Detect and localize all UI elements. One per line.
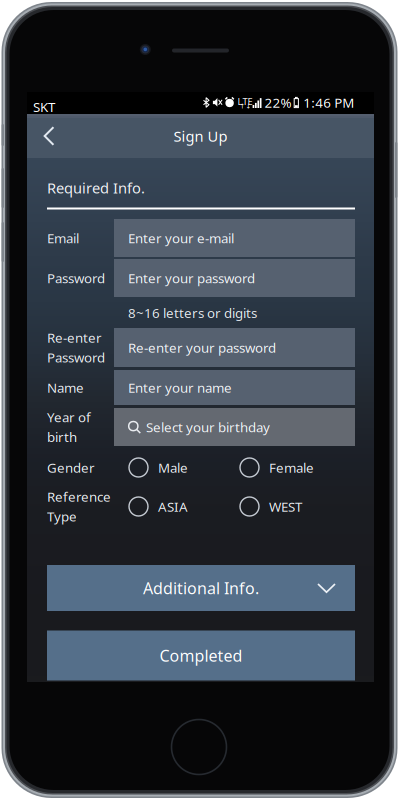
staticText: Enter your name [128, 379, 232, 396]
staticText: Select your birthday [146, 418, 270, 436]
staticText: ASIA [158, 498, 188, 515]
staticText: ↑↓ [240, 102, 252, 110]
staticText: Female [269, 459, 314, 476]
button[interactable]: Completed [47, 630, 355, 680]
staticText: Reference [47, 488, 111, 505]
button[interactable]: Additional Info. [47, 565, 355, 611]
staticText: Re-enter your password [128, 339, 276, 356]
staticText: birth [47, 428, 77, 446]
staticText: Re-enter [47, 329, 102, 346]
staticText: Enter your e-mail [128, 229, 234, 247]
staticText: Male [158, 459, 188, 476]
button[interactable]: WEST [240, 487, 340, 526]
staticText: Required Info. [47, 178, 145, 197]
staticText: Completed [159, 645, 242, 666]
staticText: Sign Up [173, 126, 227, 146]
staticText: SKT [33, 98, 55, 116]
button[interactable]: Female [240, 448, 340, 487]
staticText: LTE [238, 95, 253, 108]
staticText: Year of [47, 408, 91, 426]
staticText: Password [47, 348, 105, 366]
staticText: Additional Info. [143, 577, 259, 599]
button[interactable]: Back [27, 114, 71, 158]
staticText: Gender [47, 459, 95, 476]
staticText: 8~16 letters or digits [128, 304, 257, 322]
staticText: WEST [269, 498, 302, 515]
staticText: Password [47, 269, 105, 287]
button[interactable]: ASIA [129, 487, 229, 526]
staticText: Type [47, 507, 77, 525]
staticText: 22% [265, 94, 292, 111]
staticText: 1:46 PM [303, 94, 354, 111]
staticText: Name [47, 379, 84, 396]
staticText: Enter your password [128, 269, 255, 287]
staticText: Email [47, 229, 79, 247]
button[interactable]: Male [129, 448, 229, 487]
